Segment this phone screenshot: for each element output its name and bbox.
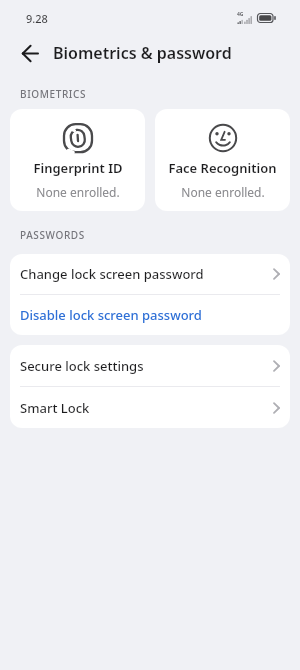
- staticText: PASSWORDS: [20, 228, 85, 242]
- staticText: Disable lock screen password: [20, 306, 202, 324]
- staticText: Biometrics & password: [53, 42, 232, 64]
- staticText: Smart Lock: [20, 399, 90, 417]
- staticText: Face Recognition: [168, 159, 277, 177]
- staticText: None enrolled.: [181, 184, 265, 200]
- staticText: None enrolled.: [36, 184, 120, 200]
- staticText: 4G: [237, 11, 244, 18]
- button[interactable]: [22, 45, 39, 62]
- button[interactable]: Change lock screen password: [10, 254, 290, 294]
- button[interactable]: Fingerprint ID: [10, 109, 145, 211]
- button[interactable]: Secure lock settings: [10, 345, 290, 386]
- staticText: Fingerprint ID: [33, 159, 123, 177]
- button[interactable]: Smart Lock: [10, 387, 290, 428]
- staticText: 9.28: [26, 11, 48, 26]
- staticText: BIOMETRICS: [20, 87, 86, 101]
- button[interactable]: Face Recognition: [155, 109, 290, 211]
- staticText: Secure lock settings: [20, 357, 144, 375]
- button[interactable]: Disable lock screen password: [10, 295, 290, 335]
- staticText: Change lock screen password: [20, 265, 204, 283]
